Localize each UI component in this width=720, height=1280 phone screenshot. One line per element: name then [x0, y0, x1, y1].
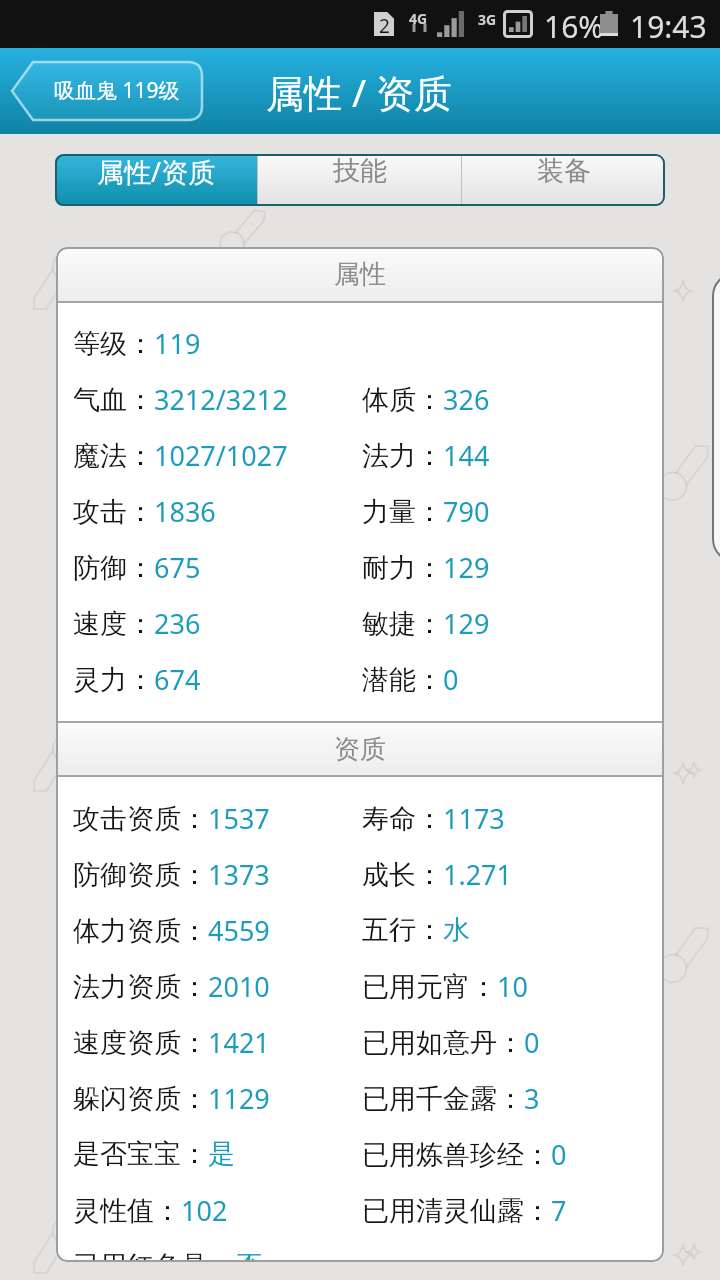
staticText: ：: [181, 1082, 208, 1116]
staticText: 4559: [208, 912, 270, 949]
staticText: 体力资质: [73, 914, 181, 948]
staticText: 气血: [73, 383, 127, 417]
staticText: 3G: [478, 10, 497, 29]
staticText: 0: [443, 661, 459, 698]
staticText: 速度资质: [73, 1026, 181, 1060]
staticText: ：: [416, 383, 443, 417]
staticText: 已用如意丹: [362, 1026, 497, 1060]
staticText: 已用清灵仙露: [362, 1194, 524, 1228]
staticText: 寿命: [362, 802, 416, 836]
staticText: ：: [416, 495, 443, 529]
staticText: 144: [443, 437, 490, 474]
staticText: 法力: [362, 439, 416, 473]
staticText: 3212/3212: [154, 381, 288, 418]
staticText: 攻击资质: [73, 802, 181, 836]
staticText: 10: [497, 968, 528, 1005]
staticText: 是: [208, 1137, 235, 1171]
button[interactable]: 属性/资质: [55, 154, 257, 206]
staticText: 属性 / 资质: [266, 66, 452, 118]
staticText: 326: [443, 381, 490, 418]
staticText: 灵性值: [73, 1194, 154, 1228]
staticText: ：: [181, 1026, 208, 1060]
staticText: 1129: [208, 1080, 270, 1117]
staticText: 19:43: [630, 6, 707, 47]
staticText: ：: [127, 383, 154, 417]
staticText: 防御资质: [73, 858, 181, 892]
staticText: ：: [208, 1249, 235, 1262]
staticText: ：: [181, 802, 208, 836]
staticText: 水: [443, 913, 470, 947]
staticText: 3: [524, 1080, 540, 1117]
staticText: 防御: [73, 551, 127, 585]
staticText: 0: [551, 1136, 567, 1173]
staticText: 675: [154, 549, 201, 586]
staticText: 129: [443, 549, 490, 586]
staticText: 否: [235, 1249, 262, 1262]
staticText: 1.271: [443, 856, 513, 893]
staticText: 潜能: [362, 663, 416, 697]
staticText: 2010: [208, 968, 270, 1005]
button[interactable]: 技能: [258, 154, 461, 206]
staticText: 1421: [208, 1024, 270, 1061]
staticText: 灵力: [73, 663, 127, 697]
staticText: 已用红色晶: [73, 1249, 208, 1262]
staticText: ：: [127, 551, 154, 585]
staticText: 1173: [443, 800, 505, 837]
button[interactable]: 装备: [462, 154, 665, 206]
staticText: ：: [497, 1082, 524, 1116]
button[interactable]: 吸血鬼 119级: [12, 62, 202, 120]
staticText: ：: [524, 1138, 551, 1172]
staticText: 装备: [537, 154, 591, 188]
staticText: 攻击: [73, 495, 127, 529]
staticText: ：: [181, 1137, 208, 1171]
staticText: ：: [181, 914, 208, 948]
staticText: 法力资质: [73, 970, 181, 1004]
staticText: 16%: [544, 6, 604, 47]
staticText: 102: [181, 1192, 228, 1229]
staticText: ：: [181, 970, 208, 1004]
staticText: ：: [524, 1194, 551, 1228]
staticText: 7: [551, 1192, 567, 1229]
staticText: 成长: [362, 858, 416, 892]
staticText: 已用炼兽珍经: [362, 1138, 524, 1172]
staticText: ：: [127, 439, 154, 473]
staticText: ：: [470, 970, 497, 1004]
staticText: 吸血鬼 119级: [54, 76, 180, 105]
staticText: 已用元宵: [362, 970, 470, 1004]
staticText: 已用千金露: [362, 1082, 497, 1116]
staticText: ：: [416, 663, 443, 697]
staticText: 0: [524, 1024, 540, 1061]
staticText: ：: [181, 858, 208, 892]
staticText: ：: [416, 551, 443, 585]
staticText: ：: [416, 858, 443, 892]
staticText: 236: [154, 605, 201, 642]
staticText: 躲闪资质: [73, 1082, 181, 1116]
staticText: 力量: [362, 495, 416, 529]
staticText: 1027/1027: [154, 437, 288, 474]
staticText: 敏捷: [362, 607, 416, 641]
staticText: 674: [154, 661, 201, 698]
staticText: 790: [443, 493, 490, 530]
staticText: 技能: [333, 154, 387, 188]
staticText: ：: [416, 913, 443, 947]
staticText: 2: [379, 13, 390, 37]
staticText: 属性: [334, 258, 386, 291]
staticText: 速度: [73, 607, 127, 641]
staticText: 1373: [208, 856, 270, 893]
staticText: 属性/资质: [97, 154, 216, 190]
staticText: 体质: [362, 383, 416, 417]
staticText: ：: [416, 802, 443, 836]
staticText: 1537: [208, 800, 270, 837]
staticText: 4G: [409, 9, 428, 28]
staticText: 等级: [73, 327, 127, 361]
staticText: 五行: [362, 913, 416, 947]
staticText: ：: [416, 439, 443, 473]
staticText: ：: [416, 607, 443, 641]
staticText: 129: [443, 605, 490, 642]
staticText: ：: [127, 327, 154, 361]
staticText: ：: [154, 1194, 181, 1228]
staticText: ：: [127, 663, 154, 697]
staticText: 1836: [154, 493, 216, 530]
staticText: 资质: [334, 733, 386, 766]
staticText: 耐力: [362, 551, 416, 585]
